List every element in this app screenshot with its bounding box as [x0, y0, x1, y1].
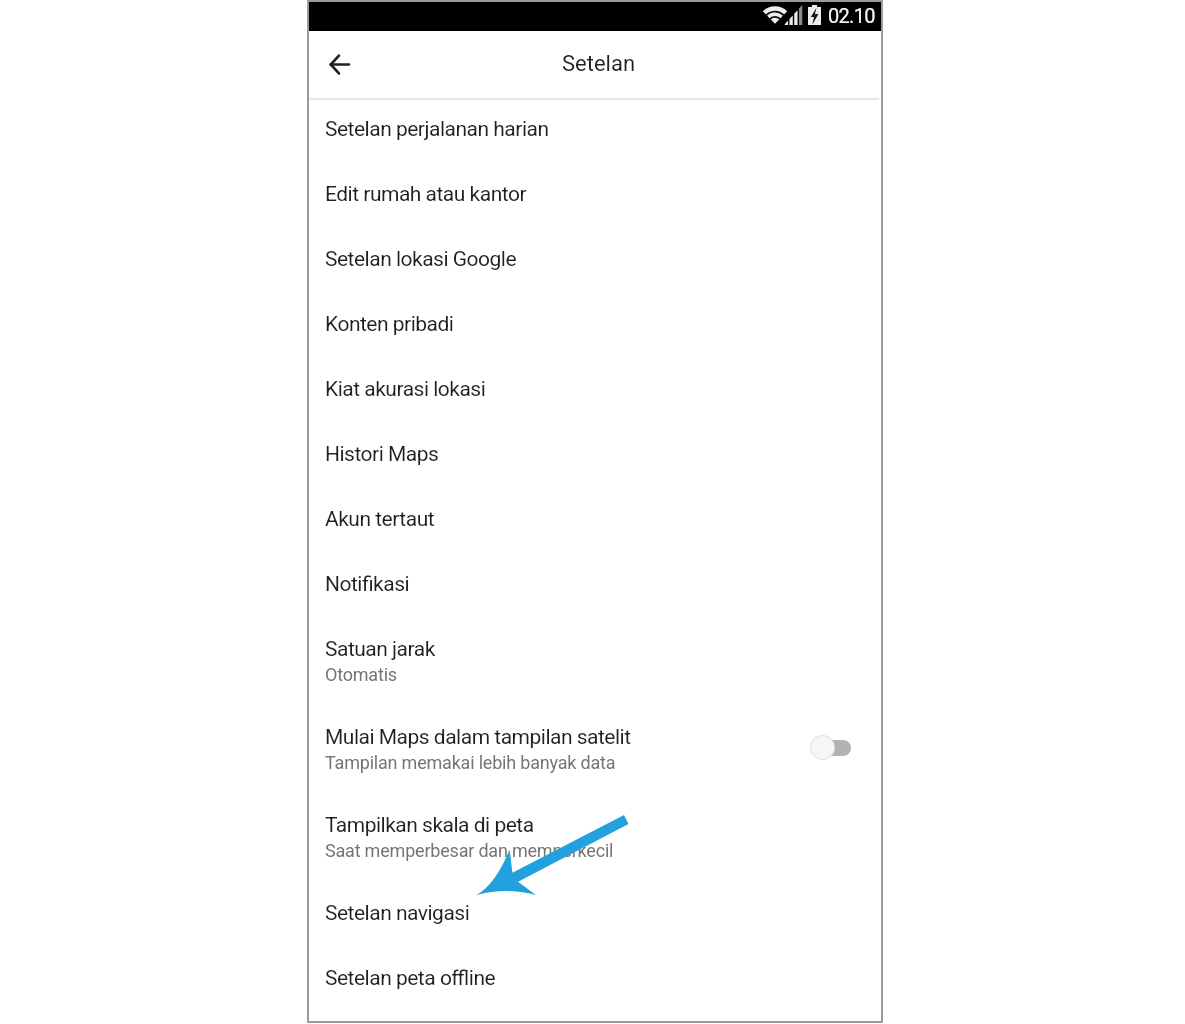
staticText: Akun tertaut: [325, 507, 435, 532]
staticText: Mulai Maps dalam tampilan satelit: [325, 725, 631, 750]
staticText: Satuan jarak: [325, 637, 435, 662]
button[interactable]: Histori Maps: [309, 423, 879, 488]
staticText: Notifikasi: [325, 572, 410, 597]
button[interactable]: Setelan peta offline: [309, 947, 879, 1012]
staticText: Otomatis: [325, 664, 397, 685]
button[interactable]: Satuan jarak: [309, 618, 879, 706]
staticText: Setelan navigasi: [325, 901, 470, 926]
staticText: 02.10: [828, 4, 875, 27]
staticText: Setelan perjalanan harian: [325, 117, 549, 142]
button[interactable]: Setelan navigasi: [309, 882, 879, 947]
staticText: Setelan lokasi Google: [325, 247, 517, 272]
button[interactable]: Kiat akurasi lokasi: [309, 358, 879, 423]
staticText: Kiat akurasi lokasi: [325, 377, 486, 402]
button[interactable]: Start Maps in satellite view: [797, 714, 855, 762]
button[interactable]: Back: [317, 40, 365, 88]
button[interactable]: Edit rumah atau kantor: [309, 163, 879, 228]
staticText: Konten pribadi: [325, 312, 454, 337]
button[interactable]: Notifikasi: [309, 553, 879, 618]
button[interactable]: Setelan lokasi Google: [309, 228, 879, 293]
button[interactable]: Akun tertaut: [309, 488, 879, 553]
staticText: Tampilan memakai lebih banyak data: [325, 752, 616, 773]
button[interactable]: Tampilkan skala di peta: [309, 794, 879, 882]
staticText: Setelan peta offline: [325, 966, 496, 991]
staticText: Histori Maps: [325, 442, 439, 467]
button[interactable]: Konten pribadi: [309, 293, 879, 358]
staticText: Tampilkan skala di peta: [325, 813, 534, 838]
button[interactable]: Mulai Maps dalam tampilan satelit: [309, 706, 879, 794]
button[interactable]: Setelan perjalanan harian: [309, 98, 879, 163]
staticText: Edit rumah atau kantor: [325, 182, 526, 207]
staticText: Setelan: [562, 51, 636, 77]
other: Annotation arrow: [474, 814, 630, 899]
staticText: Saat memperbesar dan memperkecil: [325, 840, 614, 861]
